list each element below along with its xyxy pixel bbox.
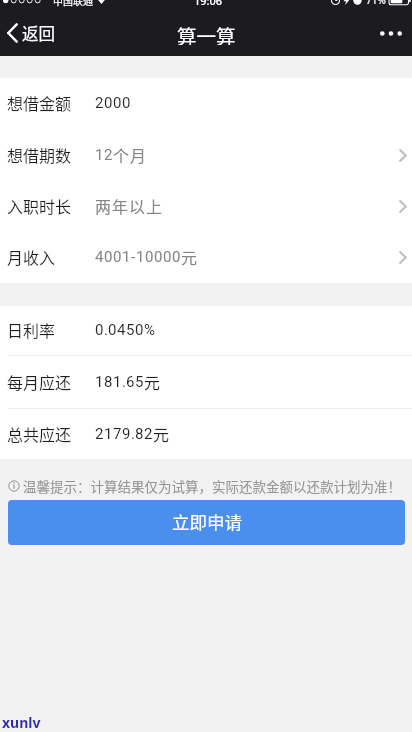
staticText: 想借金额 [7,91,72,114]
staticText: 7 [113,425,122,443]
staticText: 元 [144,370,161,393]
staticText: 0 [108,321,117,339]
staticText: 4 [117,321,126,339]
staticText: 2 [104,146,113,164]
staticText: 0 [95,321,104,339]
staticText: . [122,373,126,391]
staticText: 71% [366,0,386,7]
staticText: 想借期数 [7,143,72,166]
button[interactable]: 返回 [0,21,69,45]
staticText: 个 [113,143,130,166]
button[interactable]: 总共应还 [0,409,412,459]
staticText: 2 [95,94,104,112]
staticText: 元 [153,422,170,445]
button[interactable]: 每月应还 [0,356,412,408]
staticText: 0 [163,248,172,266]
button[interactable]: 立即申请 [8,500,405,545]
staticText: 每月应还 [7,370,72,393]
staticText: 0 [113,94,122,112]
staticText: 0 [172,248,181,266]
button[interactable]: 入职时长 [0,181,412,232]
staticText: 年 [112,194,129,217]
button[interactable]: 想借金额 [0,78,412,129]
staticText: 返回 [22,21,55,45]
button[interactable]: 月收入 [0,232,412,283]
staticText: 0 [113,248,122,266]
staticText: 2 [95,425,104,443]
staticText: . [104,321,108,339]
staticText: 温馨提示：计算结果仅为试算，实际还款金额以还款计划为准！ [23,476,401,496]
staticText: 19:06 [194,0,223,8]
staticText: 上 [146,194,163,217]
staticText: 5 [126,321,135,339]
button[interactable]: 想借期数 [0,129,412,181]
staticText: 1 [95,146,104,164]
staticText: 以 [129,194,146,217]
staticText: 元 [181,245,198,268]
staticText: 2 [144,425,153,443]
staticText: 4 [95,248,104,266]
staticText: 立即申请 [172,509,242,534]
staticText: 5 [135,373,144,391]
staticText: 两 [95,194,112,217]
staticText: 月 [130,143,147,166]
staticText: % [144,321,155,339]
staticText: 0 [135,321,144,339]
staticText: - [131,248,136,266]
staticText: 8 [104,373,113,391]
staticText: 算一算 [177,21,236,45]
staticText: 0 [104,94,113,112]
staticText: 1 [95,373,104,391]
staticText: 9 [122,425,131,443]
button[interactable]: More options [370,21,412,45]
staticText: 日利率 [7,318,56,341]
staticText: 1 [122,248,131,266]
staticText: 中国联通 [53,0,93,7]
staticText: 6 [126,373,135,391]
staticText: . [131,425,135,443]
staticText: 1 [136,248,145,266]
staticText: 0 [104,248,113,266]
button[interactable]: 日利率 [0,306,412,355]
staticText: 1 [113,373,122,391]
staticText: 入职时长 [7,194,72,217]
staticText: 8 [135,425,144,443]
staticText: 0 [122,94,131,112]
staticText: 总共应还 [7,422,72,445]
staticText: 1 [104,425,113,443]
staticText: 月收入 [7,245,56,268]
staticText: xunlv [2,713,41,732]
staticText: 0 [154,248,163,266]
staticText: 0 [145,248,154,266]
